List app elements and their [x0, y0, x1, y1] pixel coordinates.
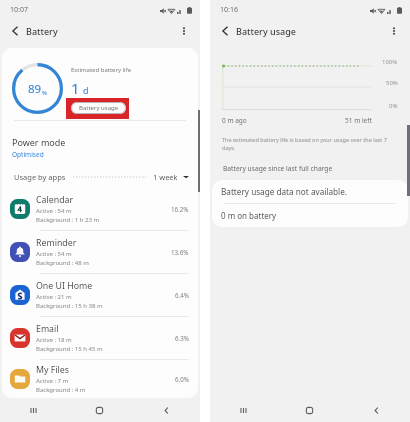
staticText: Active : 21 m	[36, 293, 72, 301]
staticText: Email	[36, 323, 59, 335]
staticText: 16.2%	[171, 205, 189, 213]
staticText: 0%	[389, 102, 398, 110]
button[interactable]: Reminder	[2, 231, 198, 274]
staticText: days.	[222, 144, 236, 151]
button[interactable]: My Files	[2, 360, 198, 398]
button[interactable]: Back	[133, 398, 200, 422]
staticText: Power mode	[12, 136, 66, 148]
button[interactable]: Battery usage data not available.	[212, 180, 408, 203]
staticText: 51 m left	[345, 116, 372, 125]
staticText: 1 week	[153, 172, 178, 182]
staticText: 6.0%	[175, 375, 189, 383]
button[interactable]: Home	[276, 398, 343, 422]
staticText: d	[83, 84, 89, 96]
staticText: Active : 7 m	[36, 377, 69, 385]
button[interactable]: Email	[2, 317, 198, 360]
staticText: Background : 48 m	[36, 259, 89, 267]
staticText: Optimised	[12, 150, 44, 159]
staticText: 50%	[386, 79, 398, 87]
button[interactable]: Back	[343, 398, 410, 422]
button[interactable]: One UI Home	[2, 274, 198, 317]
staticText: Background : 4 m	[36, 386, 86, 394]
button[interactable]: Recents	[210, 398, 276, 422]
staticText: Battery usage data not available.	[221, 186, 348, 197]
staticText: Battery	[26, 25, 58, 37]
button[interactable]: Calendar	[2, 188, 198, 231]
staticText: The estimated battery life is based on y…	[222, 136, 387, 143]
staticText: Active : 18 m	[36, 336, 72, 344]
staticText: Battery usage since last full charge	[223, 164, 333, 173]
button[interactable]: More options	[177, 24, 191, 38]
staticText: Calendar	[36, 194, 74, 206]
staticText: Battery usage	[79, 104, 119, 112]
staticText: 100%	[382, 58, 398, 66]
staticText: Reminder	[36, 237, 77, 249]
staticText: Background : 15 h 45 m	[36, 345, 103, 353]
staticText: 1	[71, 78, 80, 98]
staticText: 6.4%	[175, 291, 189, 299]
staticText: Usage by apps	[14, 172, 66, 182]
staticText: 0 m on battery	[221, 210, 277, 221]
button[interactable]: 1 week	[153, 172, 189, 182]
staticText: 10:16	[220, 5, 238, 15]
staticText: 89	[28, 81, 42, 97]
staticText: Active : 54 m	[36, 207, 72, 215]
staticText: 0 m ago	[222, 116, 247, 125]
staticText: Estimated battery life	[71, 66, 132, 74]
staticText: Active : 54 m	[36, 250, 72, 258]
staticText: %	[42, 89, 47, 97]
staticText: One UI Home	[36, 280, 93, 292]
staticText: Background : 1 h 23 m	[36, 216, 100, 224]
button[interactable]: Back	[8, 24, 22, 38]
button[interactable]: Back	[218, 24, 232, 38]
button[interactable]: Battery usage	[71, 102, 126, 114]
staticText: My Files	[36, 364, 70, 376]
staticText: 10:07	[10, 5, 28, 15]
staticText: Background : 15 h 38 m	[36, 302, 103, 310]
button[interactable]: Power mode	[2, 121, 198, 165]
button[interactable]: Home	[66, 398, 133, 422]
button[interactable]: Recents	[0, 398, 66, 422]
staticText: 6.3%	[175, 334, 189, 342]
staticText: 13.6%	[171, 248, 189, 256]
button[interactable]: More options	[387, 24, 401, 38]
staticText: Battery usage	[236, 25, 296, 37]
button[interactable]: 0 m on battery	[212, 204, 408, 227]
